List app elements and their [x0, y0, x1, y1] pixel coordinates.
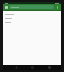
- button[interactable]: Search: [9, 5, 54, 9]
- button[interactable]: [3, 20, 61, 24]
- button[interactable]: [3, 12, 61, 16]
- button[interactable]: Home: [28, 65, 36, 70]
- button[interactable]: [3, 16, 61, 20]
- button[interactable]: Back: [12, 65, 20, 70]
- button[interactable]: Recent apps: [45, 65, 53, 70]
- button[interactable]: More options: [55, 5, 60, 10]
- button[interactable]: Menu: [4, 5, 9, 10]
